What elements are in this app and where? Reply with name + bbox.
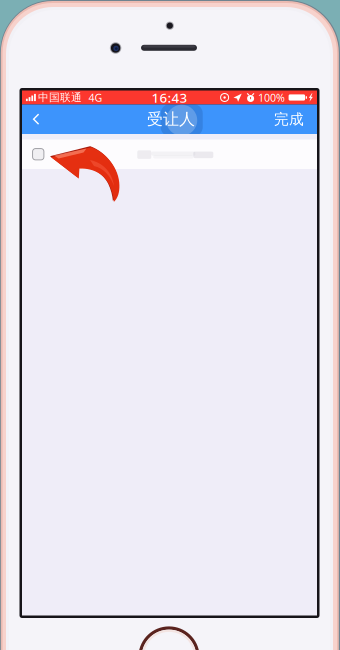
staticText: 16:43 — [151, 89, 187, 106]
button[interactable] — [22, 139, 317, 169]
staticText: 100% — [258, 90, 285, 105]
staticText: 中国联通 — [38, 91, 82, 104]
button[interactable]: 完成 — [263, 104, 317, 134]
staticText: 4G — [88, 90, 102, 105]
button[interactable]: Back — [22, 104, 50, 134]
staticText: 受让人 — [147, 109, 195, 129]
staticText: 完成 — [274, 110, 304, 128]
